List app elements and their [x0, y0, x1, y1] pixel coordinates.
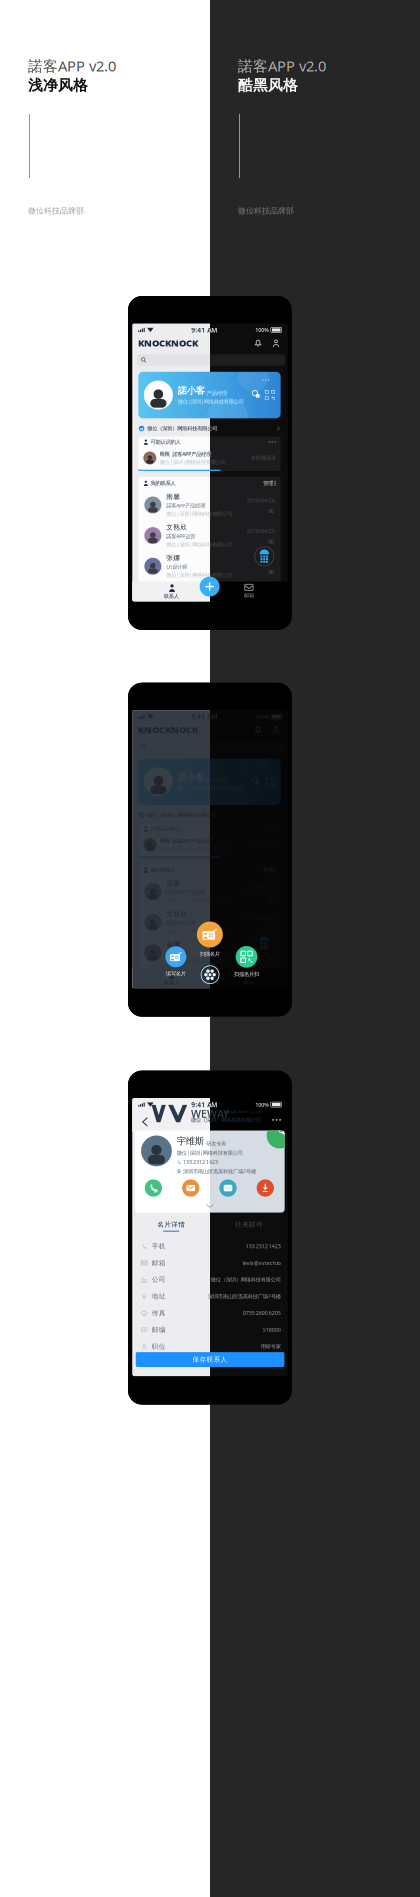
button[interactable]: w: [132, 422, 288, 435]
button[interactable]: Profile: [270, 724, 282, 736]
button[interactable]: 邮编: [132, 1321, 288, 1338]
button[interactable]: Notifications: [252, 337, 264, 349]
button[interactable]: 联系人: [132, 582, 210, 601]
button[interactable]: 传真: [132, 1305, 288, 1321]
button[interactable]: 地址: [132, 1288, 288, 1305]
button[interactable]: 文熟欣: [138, 907, 281, 938]
button[interactable]: 张娜: [138, 551, 281, 581]
button[interactable]: 保存联系人: [136, 1352, 284, 1367]
button[interactable]: Close: [201, 966, 219, 984]
button[interactable]: [137, 354, 285, 366]
button[interactable]: 雨馨: [138, 490, 281, 520]
button[interactable]: 扫描名片: [197, 921, 223, 957]
button[interactable]: 扫描名片扫: [234, 946, 259, 977]
button[interactable]: 名片详情: [132, 1219, 210, 1233]
button[interactable]: Notifications: [252, 337, 264, 349]
button[interactable]: 联系人: [132, 968, 210, 988]
button[interactable]: 地址: [132, 1288, 288, 1305]
button[interactable]: Dialer: [255, 933, 274, 953]
button[interactable]: 往来邮件: [210, 1219, 288, 1233]
button[interactable]: [137, 354, 285, 366]
button[interactable]: 张娜: [138, 938, 281, 968]
button[interactable]: New card: [200, 963, 220, 983]
staticText: 9:41 AM: [191, 1100, 217, 1109]
button[interactable]: 雨馨: [138, 876, 281, 907]
button[interactable]: 諾小客: [138, 372, 281, 418]
button[interactable]: 填写名片: [165, 946, 186, 977]
button[interactable]: 邮箱: [210, 968, 288, 988]
staticText: 微位|深圳|网络科技有限公司: [160, 458, 226, 466]
button[interactable]: Dialer: [255, 547, 274, 566]
staticText: w: [140, 812, 143, 818]
button[interactable]: 管理: [263, 480, 276, 486]
button[interactable]: 管理: [263, 867, 276, 873]
button[interactable]: 諾小客: [138, 758, 281, 805]
button[interactable]: 张娜: [138, 551, 281, 581]
button[interactable]: More: [268, 1115, 285, 1125]
button[interactable]: 手机: [132, 1238, 288, 1255]
button[interactable]: 邮箱: [210, 582, 288, 601]
button[interactable]: 靴靴: [138, 447, 281, 468]
button[interactable]: 靴靴: [138, 447, 281, 468]
button[interactable]: 保存联系人: [136, 1352, 284, 1367]
button[interactable]: 张娜: [138, 938, 281, 968]
button[interactable]: [137, 741, 285, 752]
button[interactable]: New card: [200, 577, 220, 597]
button[interactable]: Email: [182, 1179, 199, 1197]
button[interactable]: 传真: [132, 1305, 288, 1321]
button[interactable]: 諾小客: [138, 758, 281, 805]
button[interactable]: 手机: [132, 1238, 288, 1255]
button[interactable]: 文熟欣: [138, 520, 281, 551]
button[interactable]: 职位: [132, 1338, 288, 1355]
button[interactable]: New card: [200, 577, 220, 597]
button[interactable]: Call: [145, 1179, 162, 1197]
button[interactable]: 邮箱: [210, 968, 288, 988]
button[interactable]: Save: [257, 1179, 274, 1197]
staticText: 联系人: [164, 980, 179, 986]
button[interactable]: New card: [200, 963, 220, 983]
button[interactable]: 雨馨: [138, 490, 281, 520]
button[interactable]: 公司: [132, 1271, 288, 1288]
button[interactable]: Profile: [270, 337, 282, 349]
button[interactable]: 文熟欣: [138, 907, 281, 938]
button[interactable]: w: [132, 422, 288, 435]
button[interactable]: Notifications: [252, 724, 264, 736]
button[interactable]: 扫描名片扫: [234, 946, 259, 977]
button[interactable]: 邮箱: [132, 1255, 288, 1271]
button[interactable]: Save: [257, 1179, 274, 1197]
button[interactable]: Message: [219, 1179, 237, 1197]
button[interactable]: Profile: [270, 337, 282, 349]
button[interactable]: w: [132, 809, 288, 822]
button[interactable]: 雨馨: [138, 876, 281, 907]
button[interactable]: 文熟欣: [138, 520, 281, 551]
button[interactable]: 往来邮件: [210, 1219, 288, 1233]
button[interactable]: 填写名片: [165, 946, 186, 977]
button[interactable]: Back: [139, 1114, 154, 1130]
button[interactable]: 公司: [132, 1271, 288, 1288]
button[interactable]: Dialer: [255, 933, 274, 953]
button[interactable]: 联系人: [132, 968, 210, 988]
button[interactable]: Call: [145, 1179, 162, 1197]
button[interactable]: 邮编: [132, 1321, 288, 1338]
button[interactable]: 名片详情: [132, 1219, 210, 1233]
button[interactable]: 联系人: [132, 582, 210, 601]
button[interactable]: 职位: [132, 1338, 288, 1355]
button[interactable]: 靴靴: [138, 834, 281, 855]
button[interactable]: Back: [139, 1114, 154, 1130]
button[interactable]: 邮箱: [210, 582, 288, 601]
button[interactable]: Email: [182, 1179, 199, 1197]
button[interactable]: Profile: [270, 724, 282, 736]
button[interactable]: 邮箱: [132, 1255, 288, 1271]
button[interactable]: 管理: [263, 480, 276, 486]
button[interactable]: 扫描名片: [197, 921, 223, 957]
button[interactable]: 諾小客: [138, 372, 281, 418]
button[interactable]: 管理: [263, 867, 276, 873]
button[interactable]: Dialer: [255, 547, 274, 566]
button[interactable]: Notifications: [252, 724, 264, 736]
button[interactable]: w: [132, 809, 288, 822]
button[interactable]: [137, 741, 285, 752]
button[interactable]: Close: [201, 966, 219, 984]
button[interactable]: 靴靴: [138, 834, 281, 855]
button[interactable]: Message: [219, 1179, 237, 1197]
button[interactable]: More: [268, 1115, 285, 1125]
